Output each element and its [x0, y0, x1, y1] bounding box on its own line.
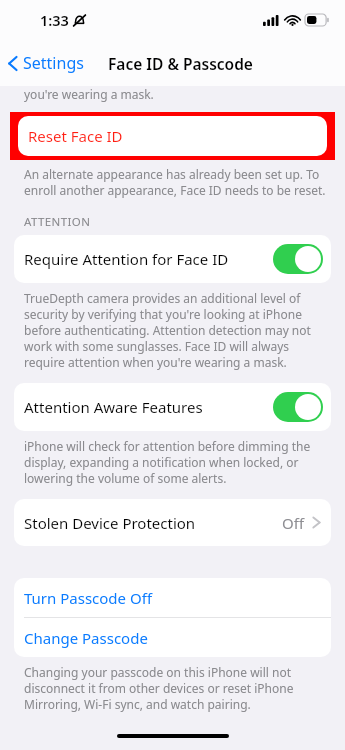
staticText: Face ID & Passcode [108, 53, 253, 74]
button[interactable]: Attention Aware Features [273, 392, 323, 422]
button[interactable]: Change Passcode [14, 618, 331, 657]
staticText: An alternate appearance has already been… [24, 166, 327, 198]
button[interactable]: Require Attention for Face ID [14, 235, 331, 283]
button[interactable]: Stolen Device Protection [14, 499, 331, 546]
staticText: Require Attention for Face ID [24, 249, 229, 269]
button[interactable]: Attention Aware Features [14, 383, 331, 431]
staticText: Changing your passcode on this iPhone wi… [24, 664, 327, 712]
button[interactable]: Settings [0, 40, 90, 86]
staticText: TrueDepth camera provides an additional … [24, 290, 327, 370]
staticText: Settings [23, 52, 84, 74]
staticText: Change Passcode [24, 628, 148, 648]
staticText: Stolen Device Protection [24, 513, 196, 533]
staticText: Turn Passcode Off [24, 588, 152, 608]
staticText: 1:33 [40, 10, 69, 30]
staticText: Off [282, 513, 305, 533]
button[interactable]: Reset Face ID [18, 116, 327, 156]
staticText: ATTENTION [24, 214, 91, 230]
staticText: Attention Aware Features [24, 397, 203, 417]
staticText: you're wearing a mask. [24, 86, 154, 102]
staticText: iPhone will check for attention before d… [24, 438, 327, 486]
button[interactable]: Require Attention for Face ID [273, 244, 323, 274]
button[interactable]: Turn Passcode Off [14, 578, 331, 617]
staticText: Reset Face ID [28, 126, 123, 146]
